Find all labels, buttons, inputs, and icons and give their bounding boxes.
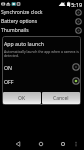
button[interactable]: Battery options [0,17,84,26]
staticText: 15:19 [68,1,83,8]
staticText: ON [4,64,12,71]
button[interactable]: ON [2,60,81,74]
staticText: Cancel [53,95,69,102]
staticText: Thumbnails [1,27,29,34]
button[interactable]: OFF [2,74,81,88]
staticText: OFF [4,78,14,85]
staticText: OK [18,95,26,102]
button[interactable]: Cancel [42,92,80,104]
button[interactable]: Recent apps [57,138,69,150]
button[interactable]: Synchronize clock [0,8,84,17]
button[interactable]: Back [12,138,24,150]
staticText: Automatically launch the app when a came… [4,49,79,58]
button[interactable]: Home [35,138,47,150]
staticText: App auto launch [4,40,44,47]
button[interactable]: Thumbnails [0,26,84,35]
button[interactable]: More options [70,138,82,150]
button[interactable]: OK [3,92,41,104]
staticText: Synchronize clock [1,9,43,16]
staticText: Battery options [1,18,38,25]
